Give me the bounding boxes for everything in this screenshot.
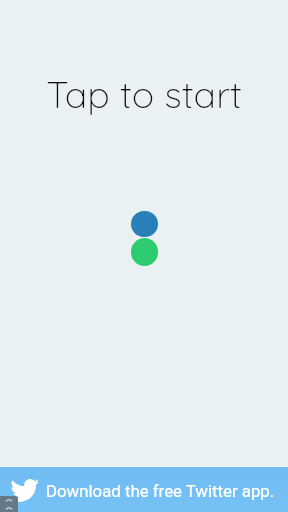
- button[interactable]: Tap to start: [0, 0, 288, 512]
- staticText: Download the free Twitter app.: [46, 481, 275, 501]
- button[interactable]: Collapse advertisement: [0, 496, 18, 512]
- staticText: Tap to start: [0, 70, 288, 117]
- button[interactable]: Download the free Twitter app.: [0, 467, 288, 512]
